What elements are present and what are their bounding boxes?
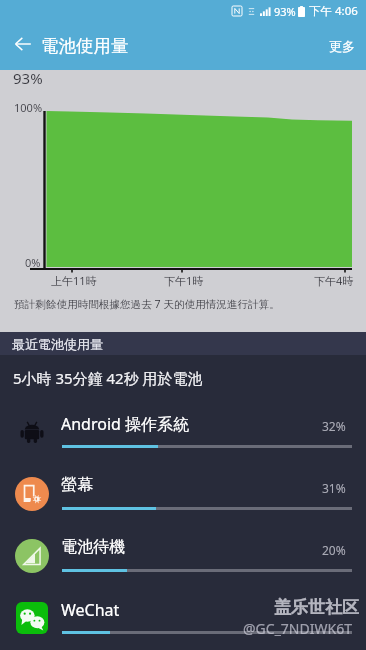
staticText: 螢幕 [61, 475, 93, 495]
staticText: 最近電池使用量 [12, 336, 103, 352]
staticText: 電池待機 [61, 537, 125, 557]
button[interactable]: Android 操作系統 [0, 401, 366, 463]
button[interactable]: 螢幕 [0, 463, 366, 525]
staticText: 20% [322, 542, 346, 558]
staticText: 32% [322, 418, 346, 434]
button[interactable]: 電池待機 [0, 525, 366, 587]
staticText: @GC_7NDIWK6T [243, 619, 352, 638]
staticText: 電池使用量 [41, 35, 129, 57]
button[interactable]: Back [1, 22, 44, 65]
staticText: 5小時 35分鐘 42秒 用於電池 [13, 368, 203, 388]
staticText: 0% [25, 255, 41, 270]
staticText: 93% [274, 4, 296, 19]
staticText: Android 操作系統 [61, 413, 190, 435]
staticText: 預計剩餘使用時間根據您過去 7 天的使用情況進行計算。 [14, 297, 280, 311]
staticText: 93% [13, 68, 43, 88]
staticText: 100% [14, 100, 43, 115]
staticText: 更多 [329, 38, 355, 54]
staticText: 下午 4:06 [309, 3, 358, 19]
staticText: WeChat [61, 599, 120, 621]
staticText: 上午11時 [51, 273, 97, 288]
staticText: 盖乐世社区 [274, 597, 359, 618]
staticText: 下午1時 [164, 273, 204, 288]
staticText: 31% [322, 480, 346, 496]
staticText: 下午4時 [314, 273, 354, 288]
button[interactable]: WeChat [0, 587, 366, 649]
button[interactable]: 更多 [318, 24, 366, 68]
